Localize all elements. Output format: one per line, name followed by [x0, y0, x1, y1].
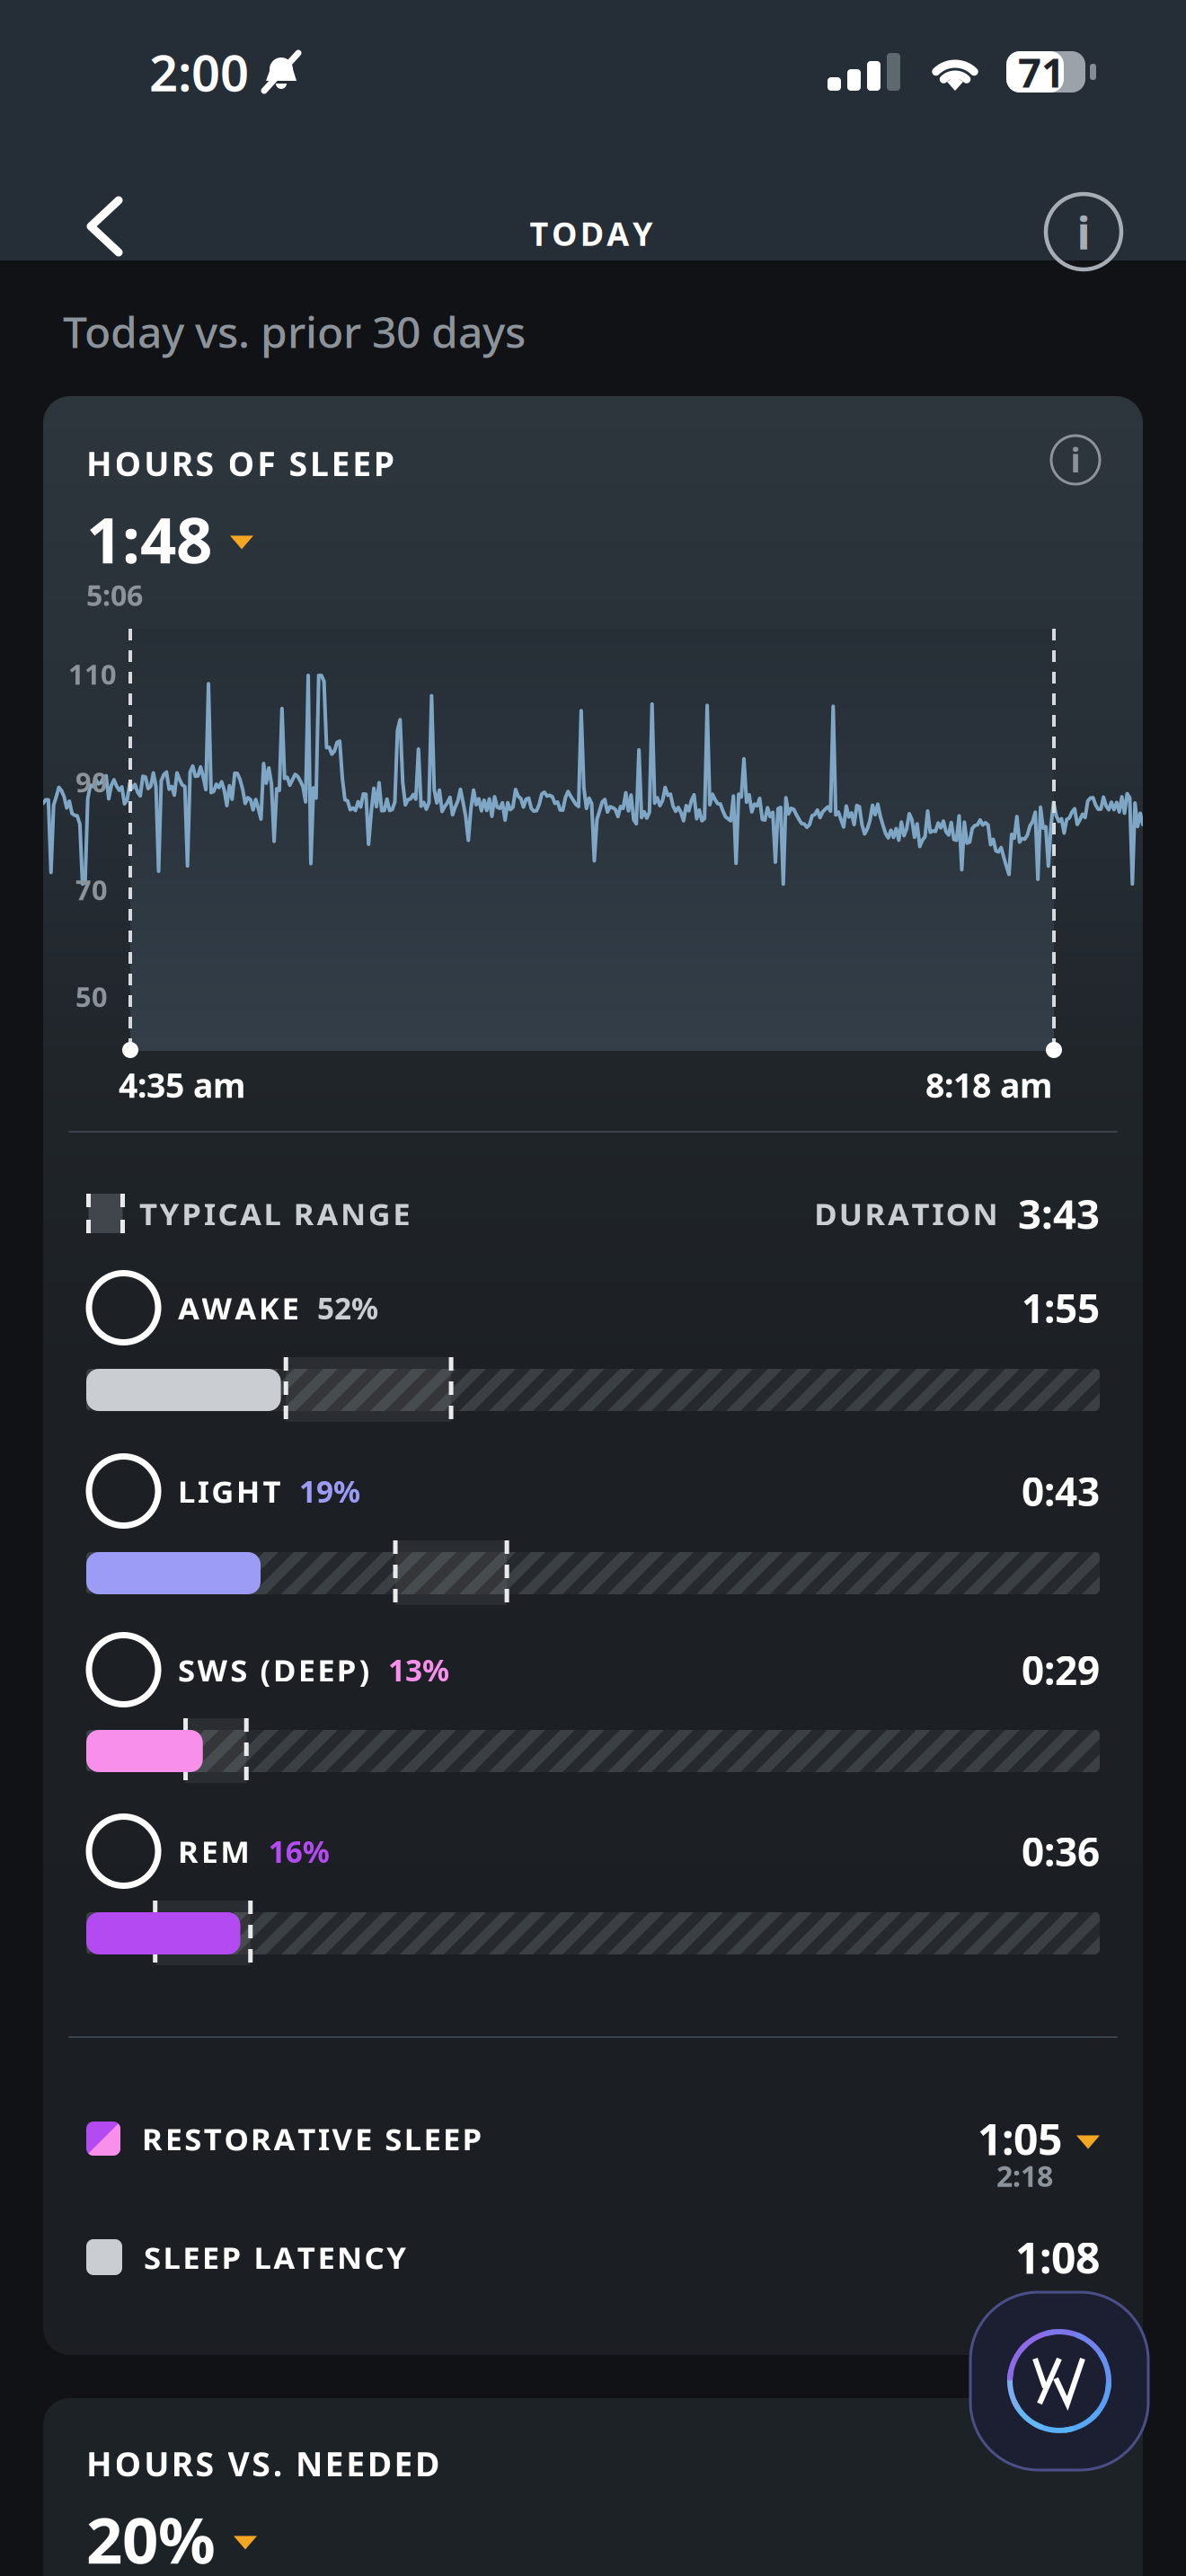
staticText: ( — [260, 1649, 271, 1690]
staticText: A — [888, 1193, 909, 1234]
staticText: A — [274, 2118, 295, 2159]
button[interactable]: Whoop Coach — [970, 2292, 1148, 2470]
staticText: E — [394, 2441, 413, 2486]
staticText: R — [251, 2118, 271, 2159]
staticText: A — [240, 1193, 261, 1234]
staticText: E — [165, 2118, 182, 2159]
staticText: O — [115, 441, 142, 486]
staticText: E — [318, 2236, 335, 2278]
staticText: U — [839, 1193, 862, 1234]
staticText: 1:55 — [1022, 1282, 1100, 1334]
staticText: 90 — [75, 763, 108, 800]
staticText: H — [86, 441, 112, 486]
staticText: A — [235, 1287, 256, 1328]
staticText: O — [552, 212, 577, 255]
staticText: E — [355, 2118, 372, 2159]
staticText: 50 — [75, 978, 108, 1015]
staticText: E — [183, 2236, 200, 2278]
staticText: 2:00 — [149, 38, 249, 105]
staticText: V — [228, 2441, 249, 2486]
button[interactable]: About hours of sleep — [1051, 436, 1100, 484]
staticText: I — [932, 1193, 944, 1234]
staticText: N — [337, 2236, 362, 2278]
staticText: S — [289, 441, 308, 486]
staticText: S — [252, 2441, 271, 2486]
staticText: E — [331, 441, 350, 486]
staticText: H — [236, 1470, 260, 1512]
staticText: D — [415, 2441, 439, 2486]
staticText: 70 — [75, 871, 108, 908]
staticText: R — [142, 2118, 163, 2159]
staticText: R — [171, 2441, 193, 2486]
staticText: E — [346, 2441, 365, 2486]
staticText: G — [368, 1193, 390, 1234]
staticText: T — [263, 1470, 281, 1512]
staticText: I — [318, 2118, 330, 2159]
staticText: P — [221, 2236, 241, 2278]
staticText: E — [201, 1831, 218, 1872]
staticText: R — [178, 1831, 199, 1872]
staticText: U — [144, 441, 169, 486]
staticText: 3:43 — [1018, 1186, 1100, 1240]
staticText: ) — [359, 1649, 370, 1690]
staticText: S — [195, 441, 214, 486]
staticText: 0:29 — [1022, 1644, 1100, 1696]
staticText: E — [352, 441, 371, 486]
staticText: N — [341, 1193, 366, 1234]
staticText: 5:06 — [86, 576, 143, 614]
staticText: L — [178, 1470, 195, 1512]
staticText: P — [337, 1649, 357, 1690]
staticText: F — [257, 441, 275, 486]
staticText: E — [424, 2118, 441, 2159]
staticText: L — [163, 2236, 180, 2278]
staticText: H — [86, 2441, 112, 2486]
staticText: P — [462, 2118, 482, 2159]
staticText: T — [204, 2118, 222, 2159]
staticText: N — [296, 2441, 323, 2486]
staticText: T — [912, 1193, 930, 1234]
staticText: R — [865, 1193, 885, 1234]
staticText: K — [259, 1287, 279, 1328]
staticText: E — [443, 2118, 460, 2159]
staticText: S — [184, 2118, 201, 2159]
staticText: I — [197, 1470, 209, 1512]
staticText: S — [385, 2118, 402, 2159]
staticText: 52% — [317, 1288, 378, 1328]
staticText: S — [178, 1649, 195, 1690]
staticText: Y — [160, 1193, 179, 1234]
button[interactable]: Back — [59, 176, 151, 278]
staticText: O — [224, 2118, 248, 2159]
staticText: 19% — [299, 1471, 360, 1511]
staticText: 4:35 am — [119, 1063, 245, 1107]
staticText: 13% — [388, 1650, 449, 1690]
staticText: N — [973, 1193, 998, 1234]
staticText: U — [144, 2441, 169, 2486]
staticText: 0:43 — [1022, 1465, 1100, 1517]
staticText: E — [393, 1193, 410, 1234]
staticText: M — [220, 1831, 250, 1872]
staticText: A — [273, 2236, 295, 2278]
staticText: D — [367, 2441, 392, 2486]
staticText: 2:18 — [996, 2157, 1053, 2195]
staticText: A — [178, 1287, 199, 1328]
staticText: S — [195, 2441, 214, 2486]
staticText: L — [254, 2236, 271, 2278]
staticText: E — [282, 1287, 299, 1328]
staticText: 16% — [268, 1831, 330, 1871]
staticText: W — [202, 1287, 232, 1328]
staticText: D — [580, 212, 604, 255]
staticText: C — [364, 2236, 384, 2278]
staticText: Y — [632, 212, 653, 255]
staticText: S — [144, 2236, 161, 2278]
staticText: T — [298, 2118, 316, 2159]
staticText: Y — [387, 2236, 406, 2278]
staticText: A — [607, 212, 629, 255]
staticText: 110 — [68, 656, 117, 692]
staticText: P — [182, 1193, 201, 1234]
button[interactable]: Info — [1046, 194, 1121, 269]
